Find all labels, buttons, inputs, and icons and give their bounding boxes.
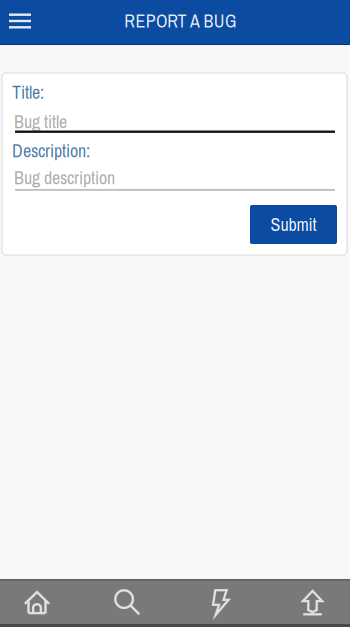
button[interactable]: Search [86,580,168,625]
button[interactable]: Submit [250,205,337,244]
staticText: Bug description [14,166,115,190]
staticText: Submit [270,212,316,237]
button[interactable]: Open navigation menu [0,0,40,43]
button[interactable]: Home [0,580,78,625]
button[interactable]: Activity [180,580,262,625]
button[interactable]: Upload [271,580,350,625]
staticText: Bug title [14,109,67,134]
staticText: Title: [12,80,44,104]
staticText: REPORT A BUG [124,9,236,33]
staticText: Description: [12,138,90,163]
